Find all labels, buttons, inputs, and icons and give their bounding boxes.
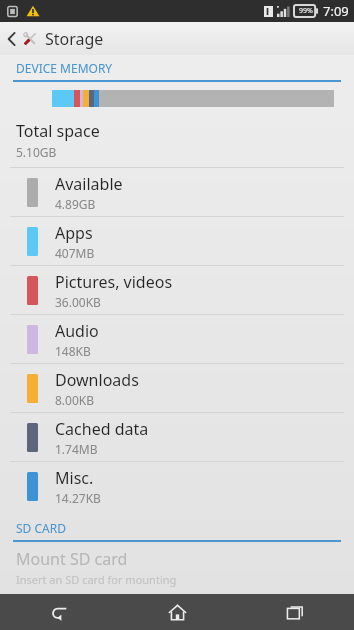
staticText: Total space <box>16 120 100 142</box>
staticText: Audio <box>55 320 99 342</box>
staticText: Insert an SD card for mounting <box>16 572 177 587</box>
staticText: 148KB <box>55 343 91 359</box>
staticText: 8.00KB <box>55 392 95 408</box>
staticText: 407MB <box>55 245 95 261</box>
staticText: Storage <box>45 28 104 50</box>
button[interactable]: Apps <box>0 217 354 265</box>
button[interactable]: Pictures, videos <box>0 266 354 314</box>
staticText: Mount SD card <box>16 548 128 570</box>
staticText: 1.74MB <box>55 441 98 457</box>
staticText: 14.27KB <box>55 490 101 506</box>
button[interactable]: Back <box>0 594 118 630</box>
button[interactable]: Recent apps <box>236 594 354 630</box>
staticText: Cached data <box>55 418 149 440</box>
button[interactable]: Home <box>118 594 236 630</box>
staticText: Pictures, videos <box>55 271 173 293</box>
button[interactable]: Total space <box>0 115 354 167</box>
staticText: SD CARD <box>16 520 66 536</box>
staticText: Misc. <box>55 467 94 489</box>
staticText: 36.00KB <box>55 294 101 310</box>
button[interactable]: Audio <box>0 315 354 363</box>
staticText: 99% <box>299 6 313 16</box>
staticText: 5.10GB <box>16 144 57 160</box>
button[interactable]: Misc. <box>0 462 354 510</box>
staticText: Available <box>55 173 123 195</box>
staticText: Apps <box>55 222 93 244</box>
staticText: DEVICE MEMORY <box>16 60 113 76</box>
button[interactable]: Available <box>0 168 354 216</box>
other: Navigate up <box>7 31 16 47</box>
staticText: 4.89GB <box>55 196 96 212</box>
button[interactable]: Downloads <box>0 364 354 412</box>
staticText: Downloads <box>55 369 139 391</box>
button[interactable]: Cached data <box>0 413 354 461</box>
button[interactable]: Navigate up <box>0 22 112 55</box>
staticText: 7:09 <box>323 2 349 20</box>
